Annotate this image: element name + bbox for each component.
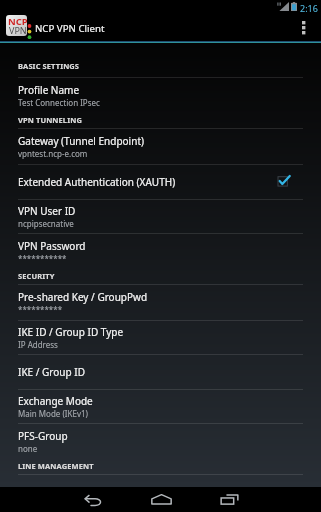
button[interactable]: More options — [296, 16, 321, 41]
button[interactable]: Exchange Mode — [0, 390, 321, 424]
button[interactable]: IKE ID / Group ID Type — [0, 321, 321, 355]
button[interactable]: Gateway (Tunnel Endpoint) — [0, 129, 321, 165]
button[interactable]: Extended Authentication (XAUTH) — [0, 165, 321, 200]
staticText: IP Address — [18, 339, 58, 350]
staticText: Test Connection IPsec — [18, 97, 100, 108]
staticText: VPN — [9, 24, 27, 36]
staticText: Main Mode (IKEv1) — [18, 408, 88, 419]
staticText: Extended Authentication (XAUTH) — [18, 175, 176, 189]
staticText: PFS-Group — [18, 429, 68, 443]
button[interactable]: VPN Password — [0, 234, 321, 268]
button[interactable]: NCP VPN Client — [6, 15, 32, 40]
button[interactable]: Pre-shared Key / GroupPwd — [0, 285, 321, 321]
staticText: VPN Password — [18, 239, 86, 253]
button[interactable]: Home — [128, 487, 194, 512]
button[interactable]: IKE / Group ID — [0, 355, 321, 390]
staticText: Exchange Mode — [18, 394, 93, 408]
staticText: VPN User ID — [18, 204, 76, 218]
staticText: IKE / Group ID — [18, 365, 85, 379]
button[interactable]: VPN User ID — [0, 200, 321, 234]
staticText: VPN TUNNELING — [18, 115, 82, 125]
button[interactable]: Profile Name — [0, 78, 321, 112]
staticText: none — [18, 443, 38, 454]
staticText: NCP VPN Client — [35, 22, 105, 35]
staticText: IKE ID / Group ID Type — [18, 325, 124, 339]
staticText: 2:16 — [300, 2, 318, 14]
staticText: LINE MANAGEMENT — [18, 461, 94, 471]
staticText: NCP — [8, 15, 27, 28]
staticText: Pre-shared Key / GroupPwd — [18, 290, 148, 304]
staticText: SECURITY — [18, 271, 55, 281]
staticText: ********** — [18, 304, 63, 315]
button[interactable]: Recent apps — [196, 487, 262, 512]
staticText: vpntest.ncp-e.com — [18, 148, 88, 159]
staticText: ncpipsecnative — [18, 218, 74, 229]
button[interactable]: PFS-Group — [0, 424, 321, 458]
staticText: *********** — [18, 253, 67, 264]
staticText: Gateway (Tunnel Endpoint) — [18, 134, 144, 148]
staticText: BASIC SETTINGS — [18, 61, 80, 71]
button[interactable]: Back — [60, 487, 126, 512]
staticText: Profile Name — [18, 83, 80, 97]
